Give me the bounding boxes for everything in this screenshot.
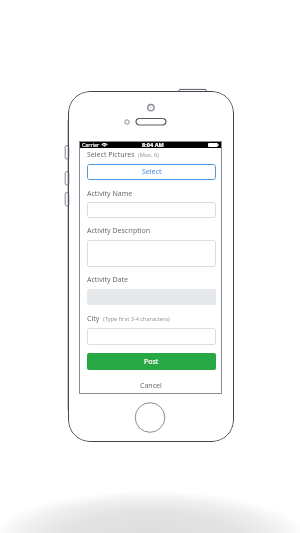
staticText: Select [142,167,162,177]
staticText: Activity Description [87,226,151,236]
staticText: Carrier [82,141,100,148]
staticText: Activity Date [87,275,128,285]
staticText: Activity Name [87,189,133,199]
staticText: 8:04 AM [142,141,164,148]
staticText: City [87,314,100,324]
staticText: Cancel [140,381,162,391]
button[interactable]: Post [87,353,216,370]
button[interactable] [87,240,216,267]
staticText: (Max. 6) [138,151,159,159]
staticText: (Type first 3-4 characters) [103,315,170,323]
button[interactable] [87,202,216,218]
button[interactable]: Cancel [79,381,222,391]
staticText: Post [144,357,159,367]
button[interactable] [87,328,216,345]
button[interactable]: Select [87,164,216,180]
staticText: Select Pictures [87,150,135,160]
